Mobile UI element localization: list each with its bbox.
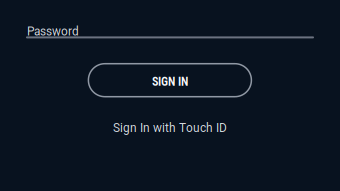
button[interactable]: Sign In with Touch ID xyxy=(0,122,340,134)
staticText: SIGN IN xyxy=(152,75,188,89)
staticText: Password xyxy=(27,24,79,38)
button[interactable]: SIGN IN xyxy=(88,64,251,97)
staticText: Sign In with Touch ID xyxy=(113,121,227,135)
